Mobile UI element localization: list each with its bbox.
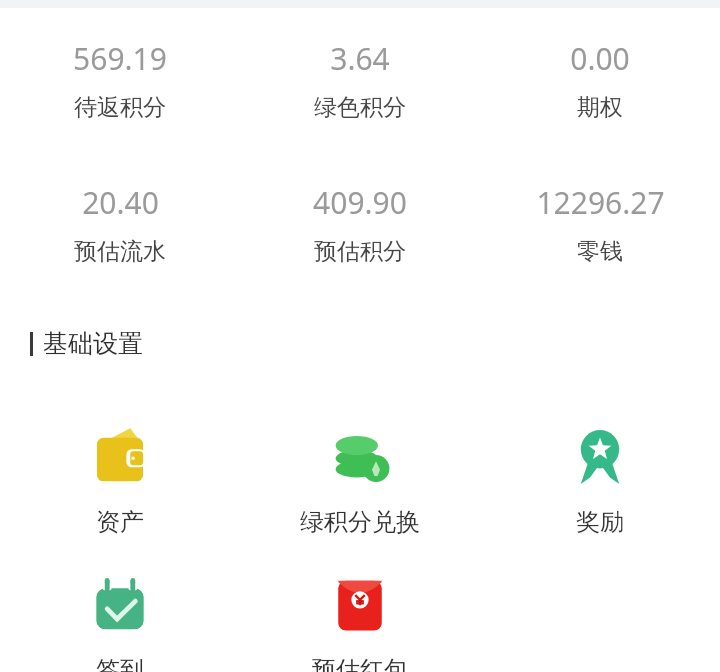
- staticText: 绿色积分: [314, 93, 406, 122]
- staticText: 预估流水: [74, 237, 166, 266]
- staticText: 预估积分: [314, 237, 406, 266]
- staticText: 12296.27: [536, 182, 665, 223]
- button[interactable]: 20.40: [0, 182, 240, 266]
- staticText: 期权: [577, 93, 623, 122]
- button[interactable]: Estimated red packet: [240, 569, 480, 672]
- staticText: 0.00: [570, 38, 630, 79]
- staticText: 3.64: [330, 38, 390, 79]
- staticText: 签到: [96, 655, 144, 672]
- button[interactable]: 3.64: [240, 38, 480, 122]
- button[interactable]: 12296.27: [480, 182, 720, 266]
- staticText: 预估红包: [312, 655, 408, 672]
- button[interactable]: 0.00: [480, 38, 720, 122]
- staticText: 569.19: [73, 38, 167, 79]
- button[interactable]: Green points exchange: [240, 421, 480, 537]
- button[interactable]: 409.90: [240, 182, 480, 266]
- button[interactable]: Check in: [0, 569, 240, 672]
- staticText: 409.90: [313, 182, 407, 223]
- button[interactable]: Rewards: [480, 421, 720, 537]
- staticText: 绿积分兑换: [300, 507, 420, 537]
- button[interactable]: 569.19: [0, 38, 240, 122]
- staticText: 零钱: [577, 237, 623, 266]
- staticText: 奖励: [576, 507, 624, 537]
- staticText: 基础设置: [43, 328, 143, 359]
- staticText: 待返积分: [74, 93, 166, 122]
- button[interactable]: Assets: [0, 421, 240, 537]
- staticText: 资产: [96, 507, 144, 537]
- staticText: 20.40: [82, 182, 159, 223]
